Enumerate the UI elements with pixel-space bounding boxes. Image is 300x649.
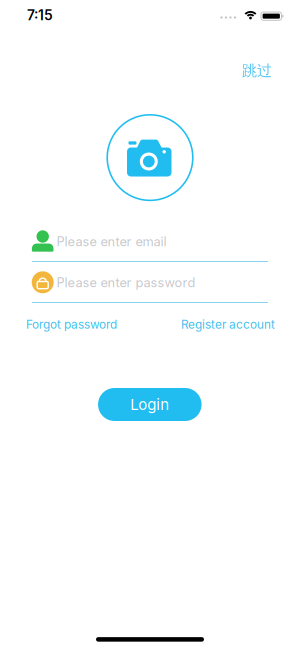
button[interactable]: Login [98, 388, 202, 421]
staticText: 跳过 [242, 61, 272, 80]
button[interactable]: Email [28, 227, 272, 263]
button[interactable]: 跳过 [242, 61, 272, 80]
staticText: Login [130, 395, 169, 413]
staticText: 7:15 [27, 7, 53, 24]
staticText: Forgot password [26, 317, 117, 332]
staticText: Please enter email [56, 234, 166, 249]
button[interactable]: Register account [181, 317, 275, 332]
button[interactable]: Password [28, 268, 272, 304]
button[interactable]: Forgot password [26, 317, 117, 332]
staticText: Please enter password [56, 275, 195, 290]
staticText: Register account [181, 317, 275, 332]
